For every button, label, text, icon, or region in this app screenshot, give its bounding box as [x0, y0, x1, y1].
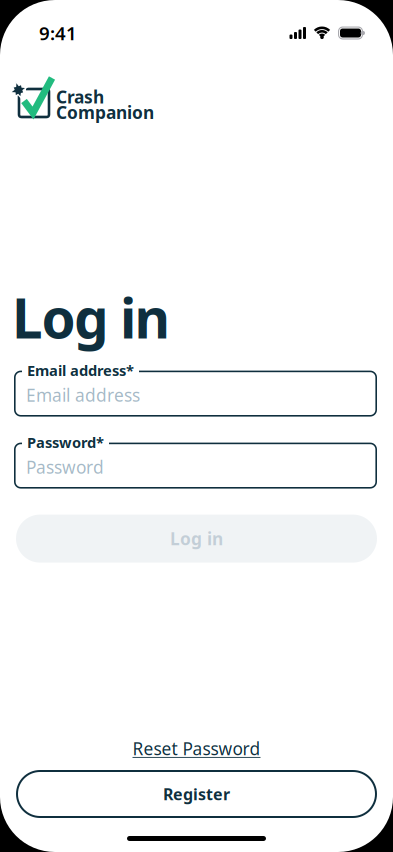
staticText: Password: [26, 456, 104, 479]
staticText: Reset Password: [132, 737, 260, 760]
button[interactable]: Reset Password: [132, 737, 260, 760]
staticText: Register: [163, 783, 230, 805]
staticText: Email address*: [27, 361, 134, 380]
button[interactable]: Email address: [14, 361, 377, 417]
button[interactable]: Register: [16, 770, 377, 818]
staticText: Log in: [170, 527, 223, 550]
button[interactable]: Log in: [16, 515, 377, 563]
button[interactable]: Password: [14, 433, 377, 489]
staticText: Companion: [56, 101, 154, 124]
staticText: Password*: [27, 433, 104, 452]
staticText: Email address: [26, 384, 140, 407]
staticText: Crash: [56, 85, 104, 108]
staticText: Log in: [12, 281, 170, 354]
staticText: 9:41: [39, 21, 77, 45]
